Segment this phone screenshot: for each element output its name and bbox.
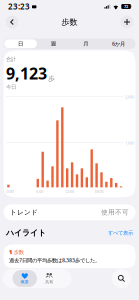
button[interactable]: 6か月 [102, 39, 135, 48]
button[interactable]: Add [117, 13, 136, 31]
staticText: ハイライト [6, 228, 46, 238]
staticText: 歩数 [14, 249, 24, 255]
button[interactable]: 月 [69, 39, 102, 48]
staticText: 過去7日間の平均歩数は8,383歩でした。 [9, 257, 100, 264]
button[interactable]: 歩数 [0, 237, 139, 268]
button[interactable]: 日 [4, 39, 37, 48]
staticText: 9,123 [6, 63, 47, 84]
staticText: 6か月 [112, 40, 125, 47]
staticText: 12:00 [65, 189, 74, 194]
staticText: トレンド [10, 208, 38, 216]
button[interactable]: Search [112, 269, 131, 288]
staticText: 1,000 [125, 140, 134, 146]
staticText: 共有 [45, 279, 53, 284]
staticText: 月 [83, 40, 88, 47]
staticText: 概要 [21, 279, 29, 284]
button[interactable]: トレンド [0, 197, 139, 220]
staticText: 合計 [6, 56, 16, 63]
button[interactable]: Back [2, 13, 21, 31]
staticText: 18:00 [94, 189, 103, 194]
button[interactable]: 共有 [37, 270, 61, 287]
staticText: 23:23 [8, 1, 30, 12]
button[interactable]: 週 [37, 39, 69, 48]
staticText: すべて表示 [108, 230, 133, 236]
staticText: 日 [18, 40, 23, 47]
button[interactable]: すべて表示 [108, 230, 133, 236]
staticText: 歩数 [61, 17, 77, 27]
staticText: 2,000 [125, 94, 134, 100]
staticText: 6:00 [36, 189, 43, 194]
staticText: 72 [124, 4, 128, 9]
staticText: 歩 [48, 74, 55, 83]
staticText: 使用不可 [101, 208, 129, 216]
staticText: 今日 [6, 84, 16, 90]
button[interactable]: 概要 [12, 270, 37, 287]
staticText: 0:00 [7, 189, 14, 194]
staticText: 週 [51, 40, 56, 47]
